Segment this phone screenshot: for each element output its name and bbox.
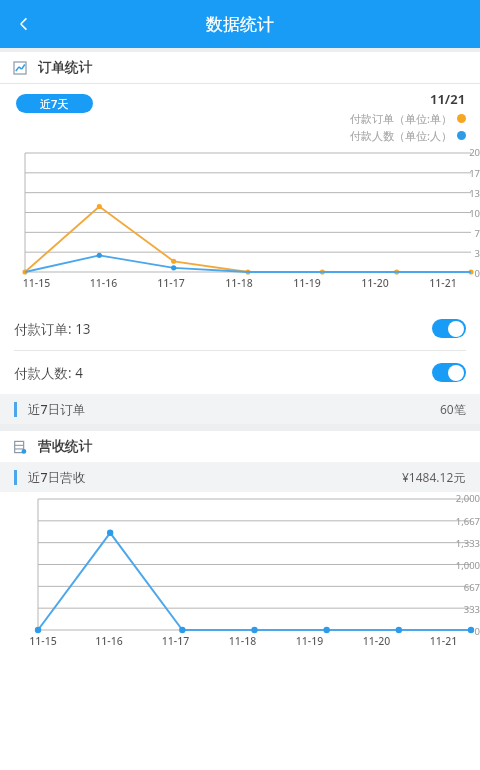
staticText: 3 xyxy=(459,247,480,260)
staticText: 11-17 xyxy=(142,634,209,648)
button[interactable]: 近7日营收 xyxy=(0,462,480,492)
staticText: 11-21 xyxy=(410,634,477,648)
staticText: 数据统计 xyxy=(206,14,274,35)
staticText: 7 xyxy=(459,227,480,240)
staticText: 1,333 xyxy=(446,537,480,550)
staticText: 1,000 xyxy=(446,559,480,572)
staticText: 近7日营收 xyxy=(28,469,86,486)
staticText: 11-19 xyxy=(276,634,343,648)
staticText: 60笔 xyxy=(440,401,466,417)
staticText: 11-18 xyxy=(205,276,273,290)
staticText: 10 xyxy=(459,207,480,220)
staticText: 20 xyxy=(459,146,480,159)
staticText: 付款订单（单位:单） xyxy=(350,111,452,126)
button[interactable]: 近7天 xyxy=(16,94,93,113)
staticText: 付款人数（单位:人） xyxy=(350,128,452,143)
staticText: 11-19 xyxy=(273,276,341,290)
staticText: 11-15 xyxy=(10,634,76,648)
other: Toggle 付款订单: 13 xyxy=(432,319,466,338)
staticText: 11-20 xyxy=(343,634,410,648)
staticText: ¥1484.12元 xyxy=(402,469,466,485)
staticText: 近7日订单 xyxy=(28,401,86,418)
staticText: 11-20 xyxy=(341,276,409,290)
other: Toggle 付款人数: 4 xyxy=(432,363,466,382)
staticText: 营收统计 xyxy=(38,438,92,455)
staticText: 11-16 xyxy=(76,634,142,648)
staticText: 2,000 xyxy=(446,492,480,505)
staticText: 667 xyxy=(446,581,480,594)
staticText: 订单统计 xyxy=(38,59,92,76)
staticText: 17 xyxy=(459,167,480,180)
staticText: 11-15 xyxy=(3,276,70,290)
staticText: 11-16 xyxy=(70,276,137,290)
staticText: 11/21 xyxy=(430,90,466,108)
staticText: 1,667 xyxy=(446,515,480,528)
staticText: 0 xyxy=(459,267,480,280)
staticText: 13 xyxy=(459,187,480,200)
button[interactable]: 近7日订单 xyxy=(0,394,480,424)
staticText: 11-21 xyxy=(409,276,477,290)
staticText: 333 xyxy=(446,603,480,616)
staticText: 付款订单: 13 xyxy=(14,320,91,338)
button[interactable]: 付款订单: 13 xyxy=(0,307,480,350)
staticText: 11-18 xyxy=(209,634,276,648)
staticText: 11-17 xyxy=(137,276,205,290)
button[interactable]: 付款人数: 4 xyxy=(0,351,480,394)
staticText: 付款人数: 4 xyxy=(14,364,83,382)
staticText: 近7天 xyxy=(40,96,69,111)
button[interactable]: Back xyxy=(0,0,48,48)
staticText: 0 xyxy=(446,625,480,638)
